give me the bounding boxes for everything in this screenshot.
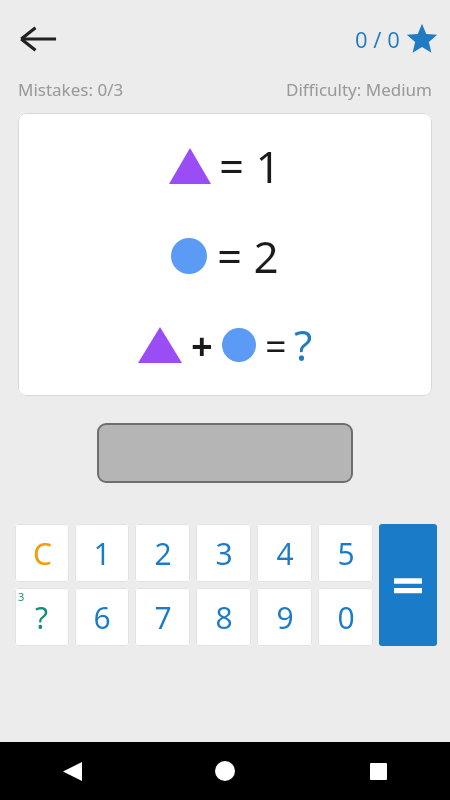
button[interactable]: 1: [75, 524, 129, 582]
button[interactable]: 0: [318, 588, 373, 646]
staticText: 3: [18, 589, 25, 604]
staticText: 0: [337, 597, 355, 638]
button[interactable]: 6: [75, 588, 129, 646]
button[interactable]: 2: [135, 524, 190, 582]
staticText: Difficulty: Medium: [286, 78, 432, 101]
staticText: +: [191, 319, 213, 371]
button[interactable]: 9: [257, 588, 312, 646]
staticText: = 1: [219, 136, 281, 196]
button[interactable]: Back: [6, 7, 70, 71]
staticText: 4: [276, 533, 294, 574]
staticText: 8: [215, 597, 233, 638]
staticText: 1: [93, 533, 111, 574]
button[interactable]: 8: [196, 588, 251, 646]
button[interactable]: Equals, submit answer: [379, 524, 437, 646]
staticText: =: [265, 319, 287, 371]
staticText: 2: [154, 533, 172, 574]
staticText: 5: [337, 533, 355, 574]
staticText: 0 / 0: [355, 24, 400, 54]
staticText: ?: [35, 597, 49, 638]
staticText: C: [33, 533, 52, 574]
button[interactable]: 4: [257, 524, 312, 582]
button[interactable]: 0 / 0: [355, 23, 438, 55]
button[interactable]: Answer field: [97, 423, 353, 483]
button[interactable]: C: [15, 524, 69, 582]
button[interactable]: Recent apps: [354, 747, 402, 795]
staticText: 3: [215, 533, 233, 574]
button[interactable]: Home: [201, 747, 249, 795]
button[interactable]: 5: [318, 524, 373, 582]
button[interactable]: 3: [196, 524, 251, 582]
staticText: 7: [154, 597, 172, 638]
staticText: = 2: [217, 226, 279, 286]
staticText: ?: [294, 316, 313, 373]
button[interactable]: Hint, 3 remaining: [15, 588, 69, 646]
button[interactable]: 7: [135, 588, 190, 646]
staticText: 6: [93, 597, 111, 638]
staticText: Mistakes: 0/3: [18, 78, 124, 101]
staticText: 9: [276, 597, 294, 638]
button[interactable]: Back: [48, 747, 96, 795]
